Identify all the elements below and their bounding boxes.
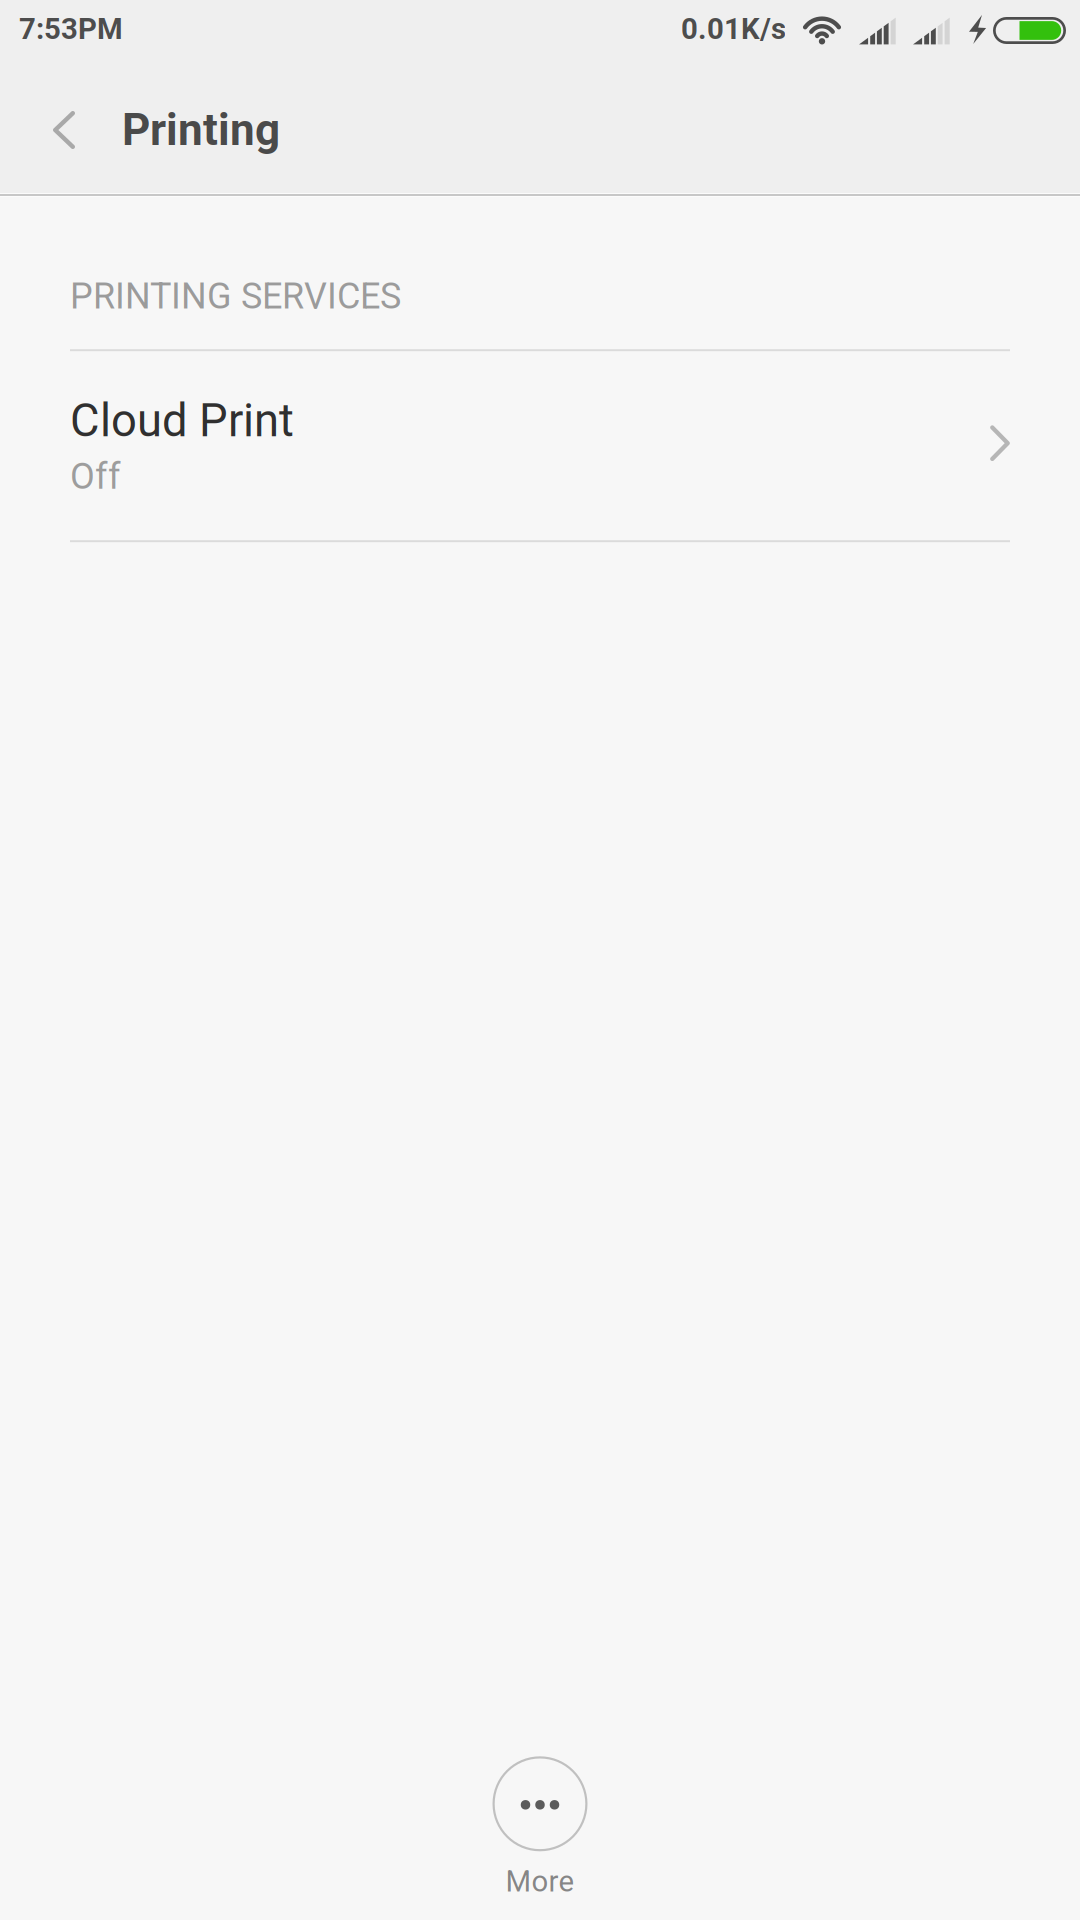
staticText: More	[505, 1864, 574, 1899]
staticText: 0.01K/s	[681, 12, 786, 46]
staticText: PRINTING SERVICES	[70, 275, 401, 317]
button[interactable]: Cloud Print	[0, 351, 1080, 540]
button[interactable]: Back	[0, 64, 122, 196]
staticText: Cloud Print	[70, 394, 294, 447]
staticText: Printing	[122, 104, 280, 156]
staticText: 7:53PM	[19, 12, 123, 46]
button[interactable]: More	[430, 1758, 650, 1897]
staticText: Off	[70, 455, 121, 497]
